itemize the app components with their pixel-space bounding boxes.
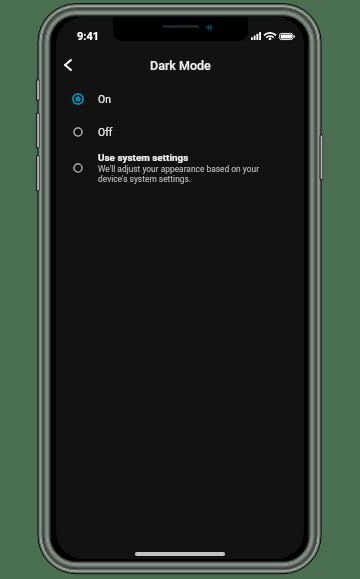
staticText: 9:41: [77, 30, 100, 43]
button[interactable]: Back: [56, 53, 82, 79]
button[interactable]: On: [56, 85, 304, 111]
button[interactable]: Off: [56, 118, 304, 144]
staticText: Off: [98, 126, 113, 138]
button[interactable]: Use system settings: [56, 148, 304, 186]
staticText: Use system settings: [98, 152, 189, 164]
staticText: On: [98, 93, 111, 105]
staticText: We'll adjust your appearance based on yo…: [98, 164, 276, 184]
staticText: Dark Mode: [150, 58, 211, 73]
